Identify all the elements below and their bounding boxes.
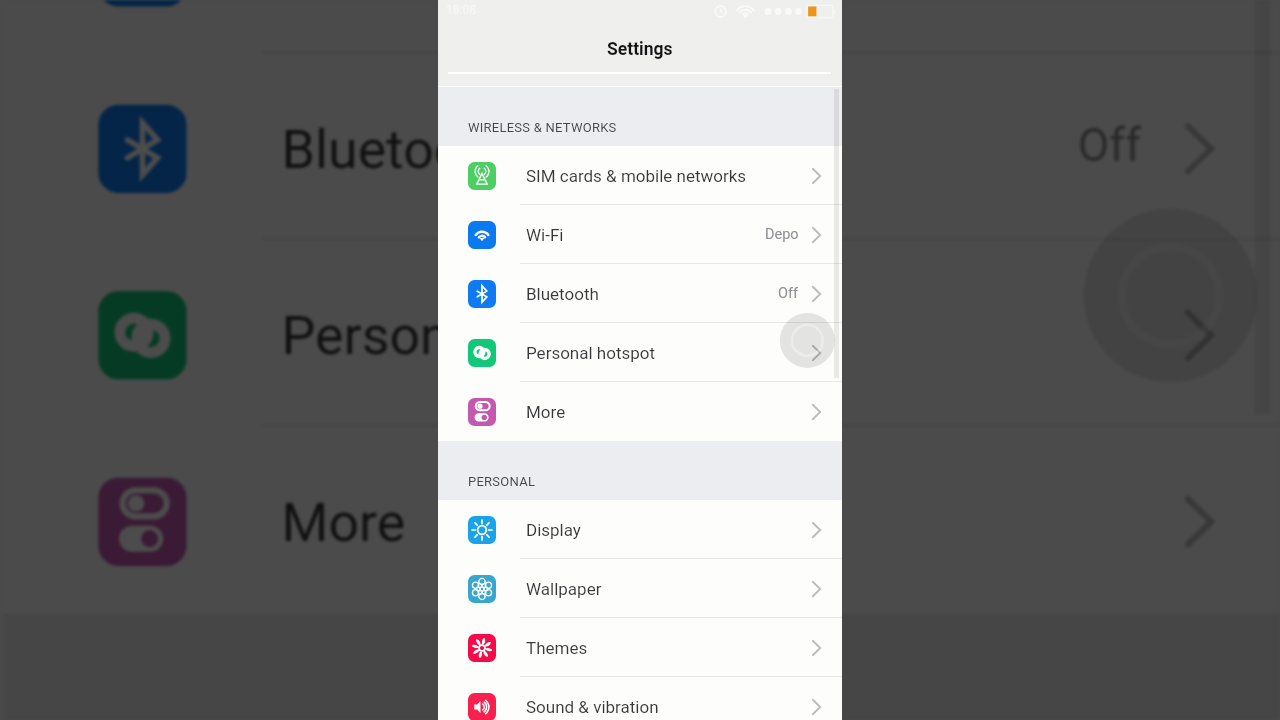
button[interactable]: SIM cards & mobile networks bbox=[438, 146, 842, 205]
button[interactable]: Themes bbox=[438, 618, 842, 677]
staticText: Themes bbox=[526, 638, 588, 658]
staticText: Settings bbox=[607, 39, 673, 60]
staticText: Wallpaper bbox=[526, 579, 602, 599]
button[interactable]: Personal hotspot bbox=[438, 323, 842, 382]
staticText: PERSONAL bbox=[468, 474, 536, 489]
staticText: Bluetooth bbox=[526, 284, 599, 304]
staticText: Depo bbox=[765, 226, 799, 243]
button[interactable]: Bluetooth bbox=[438, 264, 842, 323]
staticText: Sound & vibration bbox=[526, 697, 659, 717]
staticText: PERSONAL bbox=[468, 474, 536, 489]
button[interactable]: SIM cards & mobile networks bbox=[438, 146, 842, 205]
staticText: WIRELESS & NETWORKS bbox=[468, 120, 617, 135]
button[interactable]: Themes bbox=[438, 618, 842, 677]
staticText: Display bbox=[526, 520, 581, 540]
button[interactable]: Wallpaper bbox=[438, 559, 842, 618]
staticText: Wallpaper bbox=[526, 579, 602, 599]
button[interactable]: Display bbox=[438, 500, 842, 559]
staticText: Bluetooth bbox=[526, 284, 599, 304]
staticText: Off bbox=[778, 285, 799, 302]
staticText: Wi-Fi bbox=[526, 225, 564, 245]
staticText: Personal hotspot bbox=[526, 343, 656, 363]
button[interactable]: More bbox=[438, 382, 842, 441]
button[interactable]: Wi-Fi bbox=[438, 205, 842, 264]
staticText: Display bbox=[526, 520, 581, 540]
staticText: Sound & vibration bbox=[526, 697, 659, 717]
button[interactable]: Sound & vibration bbox=[438, 677, 842, 720]
staticText: SIM cards & mobile networks bbox=[526, 166, 747, 186]
button[interactable]: Wallpaper bbox=[438, 559, 842, 618]
staticText: Depo bbox=[765, 226, 799, 243]
staticText: Personal hotspot bbox=[526, 343, 656, 363]
button[interactable]: Bluetooth bbox=[438, 264, 842, 323]
staticText: WIRELESS & NETWORKS bbox=[468, 120, 617, 135]
button[interactable]: Personal hotspot bbox=[438, 323, 842, 382]
button[interactable]: Wi-Fi bbox=[438, 205, 842, 264]
button[interactable]: Sound & vibration bbox=[438, 677, 842, 720]
staticText: More bbox=[526, 402, 566, 422]
staticText: Wi-Fi bbox=[526, 225, 564, 245]
staticText: Off bbox=[778, 285, 799, 302]
staticText: Settings bbox=[607, 39, 673, 60]
button[interactable]: Display bbox=[438, 500, 842, 559]
button[interactable]: More bbox=[438, 382, 842, 441]
staticText: Themes bbox=[526, 638, 588, 658]
staticText: SIM cards & mobile networks bbox=[526, 166, 747, 186]
staticText: More bbox=[526, 402, 566, 422]
